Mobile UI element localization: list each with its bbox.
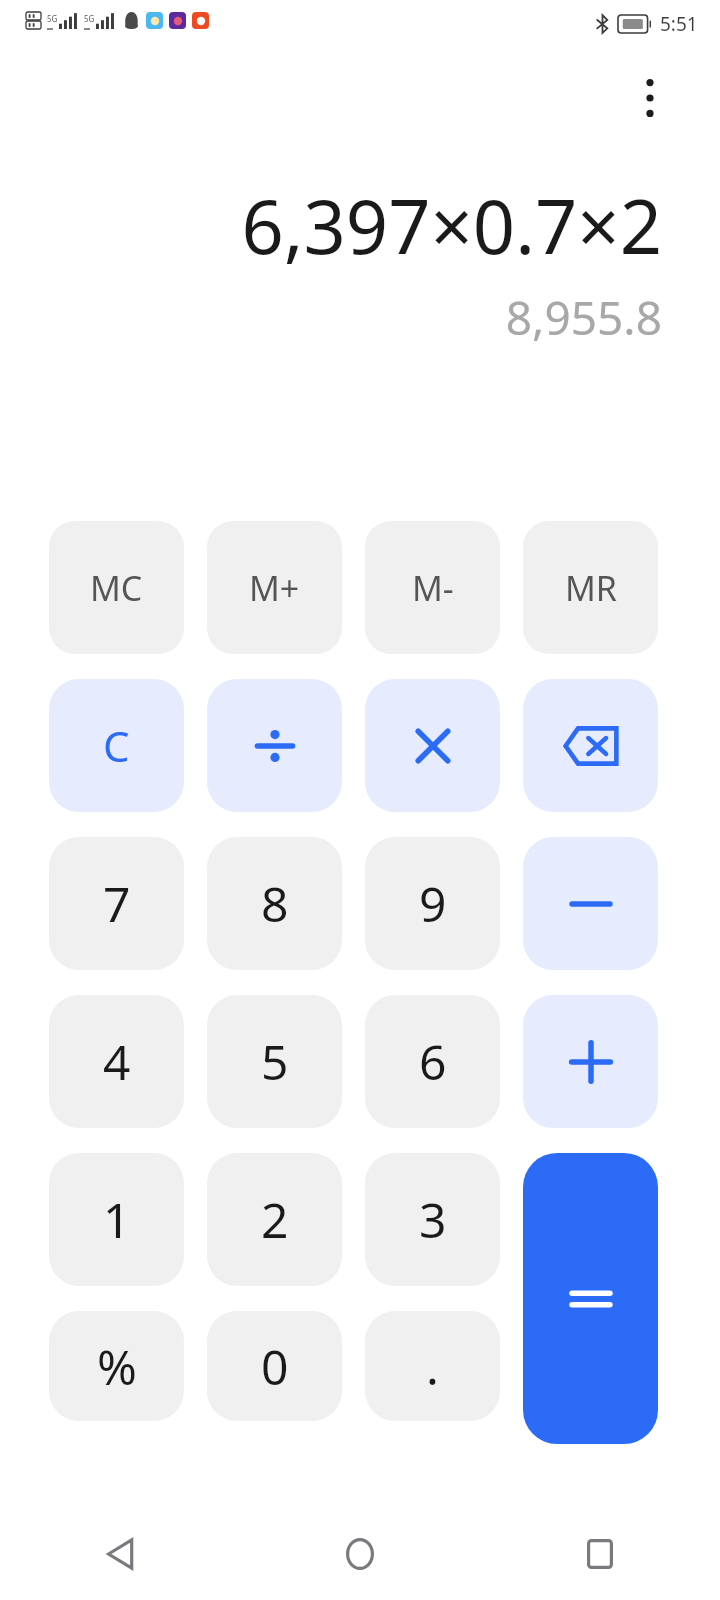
button[interactable]: M- <box>365 521 500 654</box>
staticText: 3 <box>419 1187 447 1252</box>
button[interactable]: MC <box>49 521 184 654</box>
button[interactable]: 9 <box>365 837 500 970</box>
button[interactable]: Back <box>0 1508 240 1600</box>
staticText: 0 <box>261 1334 289 1399</box>
button[interactable]: 1 <box>49 1153 184 1286</box>
button[interactable]: 3 <box>365 1153 500 1286</box>
button[interactable]: M+ <box>207 521 342 654</box>
button[interactable]: C <box>49 679 184 812</box>
button[interactable]: 6 <box>365 995 500 1128</box>
staticText: 6 <box>419 1029 447 1094</box>
button[interactable]: Multiply <box>365 679 500 812</box>
button[interactable]: Divide <box>207 679 342 812</box>
button[interactable]: Plus <box>523 995 658 1128</box>
button[interactable]: Backspace <box>523 679 658 812</box>
staticText: . <box>426 1334 439 1399</box>
staticText: 8 <box>261 871 289 936</box>
button[interactable]: 7 <box>49 837 184 970</box>
staticText: 1 <box>103 1187 131 1252</box>
staticText: 7 <box>103 871 131 936</box>
staticText: 6,397×0.7×2 <box>241 175 662 276</box>
button[interactable]: MR <box>523 521 658 654</box>
staticText: 2 <box>261 1187 289 1252</box>
button[interactable]: Recents <box>480 1508 720 1600</box>
staticText: M+ <box>249 565 300 611</box>
button[interactable]: 2 <box>207 1153 342 1286</box>
staticText: 5 <box>261 1029 289 1094</box>
staticText: MR <box>565 565 617 611</box>
button[interactable]: Equals <box>523 1153 658 1444</box>
staticText: C <box>103 717 130 774</box>
button[interactable]: 5 <box>207 995 342 1128</box>
staticText: 5:51 <box>660 11 698 37</box>
button[interactable]: 0 <box>207 1311 342 1421</box>
button[interactable]: % <box>49 1311 184 1421</box>
staticText: 5G <box>84 13 95 24</box>
button[interactable]: Home <box>240 1508 480 1600</box>
staticText: MC <box>90 565 143 611</box>
staticText: 5G <box>47 13 58 24</box>
button[interactable]: 4 <box>49 995 184 1128</box>
button[interactable]: 8 <box>207 837 342 970</box>
staticText: 4 <box>103 1029 131 1094</box>
staticText: 9 <box>419 871 447 936</box>
button[interactable]: Minus <box>523 837 658 970</box>
button[interactable]: . <box>365 1311 500 1421</box>
button[interactable]: More options <box>618 66 682 130</box>
staticText: % <box>97 1334 137 1399</box>
staticText: M- <box>412 565 454 611</box>
staticText: 8,955.8 <box>505 286 662 349</box>
